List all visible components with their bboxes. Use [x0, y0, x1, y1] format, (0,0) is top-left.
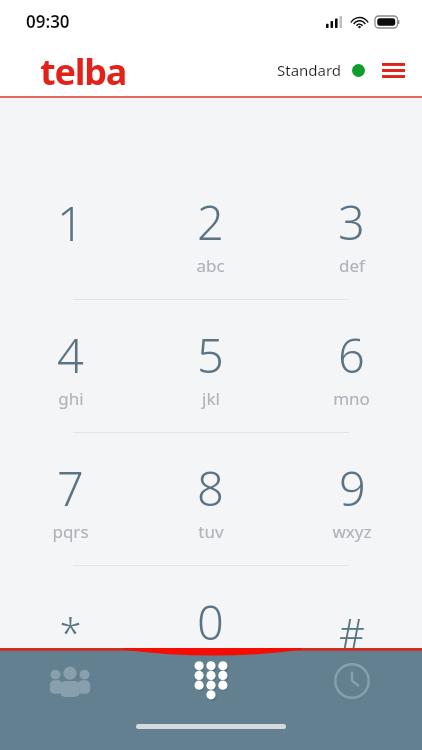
button[interactable]: Menu [378, 55, 408, 85]
button[interactable]: * [0, 566, 140, 698]
button[interactable]: Recents [281, 648, 422, 726]
button[interactable]: telba [40, 47, 127, 96]
button[interactable]: 3 [281, 168, 422, 299]
button[interactable]: Keypad [140, 648, 281, 726]
button[interactable]: 1 [0, 168, 140, 299]
button[interactable]: 5 [140, 300, 281, 432]
staticText: 0 [197, 590, 224, 654]
staticText: 9 [339, 456, 366, 520]
button[interactable]: Contacts [0, 648, 140, 726]
staticText: 5 [197, 323, 224, 387]
button[interactable]: 8 [140, 433, 281, 565]
button[interactable]: 0 [140, 566, 281, 698]
staticText: mno [333, 387, 370, 410]
staticText: + [206, 655, 215, 675]
button[interactable]: 2 [140, 168, 281, 299]
staticText: jkl [202, 387, 220, 410]
staticText: 7 [57, 456, 84, 520]
staticText: # [339, 605, 365, 659]
staticText: 09:30 [26, 10, 70, 33]
staticText: 6 [338, 323, 365, 387]
staticText: 1 [57, 191, 84, 255]
staticText: Standard [277, 60, 342, 80]
staticText: pqrs [52, 520, 89, 543]
staticText: 2 [197, 190, 224, 254]
staticText: * [59, 605, 82, 659]
button[interactable]: 4 [0, 300, 140, 432]
staticText: def [339, 254, 365, 277]
staticText: 4 [57, 323, 84, 387]
button[interactable]: 7 [0, 433, 140, 565]
button[interactable]: # [281, 566, 422, 698]
staticText: abc [196, 254, 225, 277]
staticText: tuv [198, 520, 224, 543]
staticText: wxyz [332, 520, 372, 543]
button[interactable]: 6 [281, 300, 422, 432]
button[interactable]: 9 [281, 433, 422, 565]
staticText: 8 [197, 456, 224, 520]
staticText: 3 [338, 190, 365, 254]
button[interactable]: Standard [277, 60, 365, 80]
staticText: ghi [58, 387, 84, 410]
